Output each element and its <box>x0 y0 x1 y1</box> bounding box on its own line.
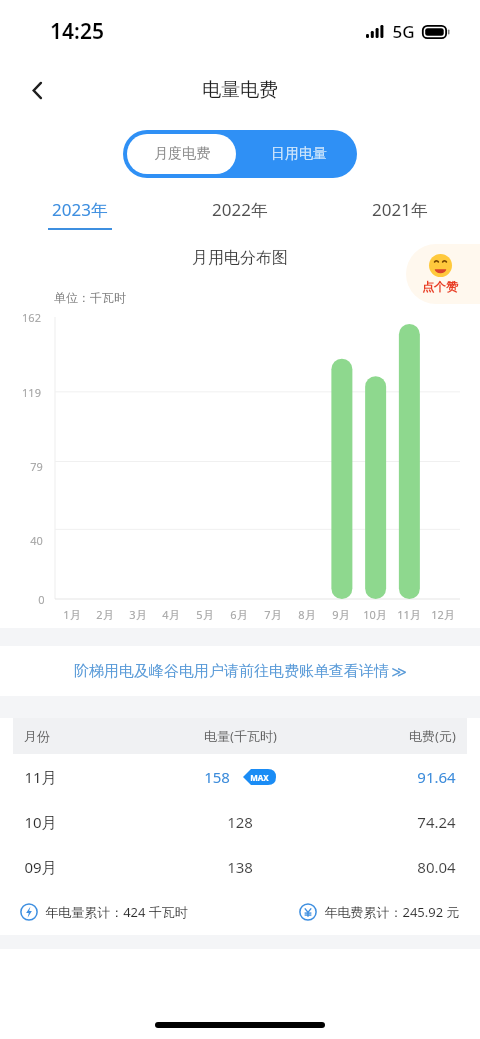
staticText: 14:25 <box>50 17 104 46</box>
button[interactable]: 11月 <box>0 754 480 799</box>
staticText: 11月 <box>24 767 57 787</box>
button[interactable]: 月度电费 <box>127 134 236 174</box>
staticText: 0 <box>38 592 45 607</box>
staticText: 128 <box>227 812 253 832</box>
button[interactable]: 2021年 <box>320 192 480 236</box>
staticText: 2023年 <box>52 198 108 221</box>
staticText: 1月 <box>63 607 81 622</box>
staticText: 电量电费 <box>202 78 278 102</box>
button[interactable]: 09月 <box>0 844 480 889</box>
staticText: 79 <box>30 459 43 474</box>
staticText: 80.04 <box>417 857 456 877</box>
button[interactable]: 2022年 <box>160 192 320 236</box>
staticText: 点个赞 <box>422 279 458 294</box>
staticText: 7月 <box>264 607 282 622</box>
button[interactable]: 点个赞 <box>406 244 480 304</box>
staticText: 09月 <box>24 857 57 877</box>
staticText: 2022年 <box>212 198 268 221</box>
staticText: 162 <box>22 310 41 325</box>
staticText: 91.64 <box>417 767 456 787</box>
staticText: 2月 <box>96 607 114 622</box>
staticText: 3月 <box>129 607 147 622</box>
staticText: 12月 <box>431 607 455 622</box>
staticText: 158 <box>204 767 230 787</box>
staticText: 138 <box>227 857 253 877</box>
staticText: 10月 <box>24 812 57 832</box>
staticText: 阶梯用电及峰谷电用户请前往电费账单查看详情 <box>74 662 389 681</box>
staticText: 6月 <box>230 607 248 622</box>
staticText: 11月 <box>397 607 421 622</box>
staticText: 电费(元) <box>409 727 456 745</box>
button[interactable]: 10月 <box>0 799 480 844</box>
staticText: 年电量累计：424 千瓦时 <box>45 903 188 921</box>
button[interactable]: 日用电量 <box>240 130 357 178</box>
button[interactable]: Back <box>14 67 60 113</box>
staticText: 电量(千瓦时) <box>204 727 277 745</box>
button[interactable]: 阶梯用电及峰谷电用户请前往电费账单查看详情 <box>0 646 480 696</box>
staticText: MAX <box>250 772 269 783</box>
staticText: 40 <box>30 533 43 548</box>
staticText: 月用电分布图 <box>192 248 288 268</box>
staticText: 单位：千瓦时 <box>54 290 126 305</box>
staticText: 5G <box>392 20 415 43</box>
staticText: 月度电费 <box>154 145 210 163</box>
staticText: 月份 <box>24 728 50 744</box>
staticText: 日用电量 <box>271 145 327 163</box>
staticText: 2021年 <box>372 198 428 221</box>
staticText: 9月 <box>332 607 350 622</box>
staticText: ≫ <box>391 663 407 680</box>
staticText: 8月 <box>298 607 316 622</box>
staticText: 4月 <box>162 607 180 622</box>
staticText: 年电费累计：245.92 元 <box>324 903 460 921</box>
staticText: 10月 <box>363 607 387 622</box>
staticText: 5月 <box>196 607 214 622</box>
staticText: 74.24 <box>417 812 456 832</box>
button[interactable]: 2023年 <box>0 192 160 236</box>
staticText: 119 <box>22 385 41 400</box>
